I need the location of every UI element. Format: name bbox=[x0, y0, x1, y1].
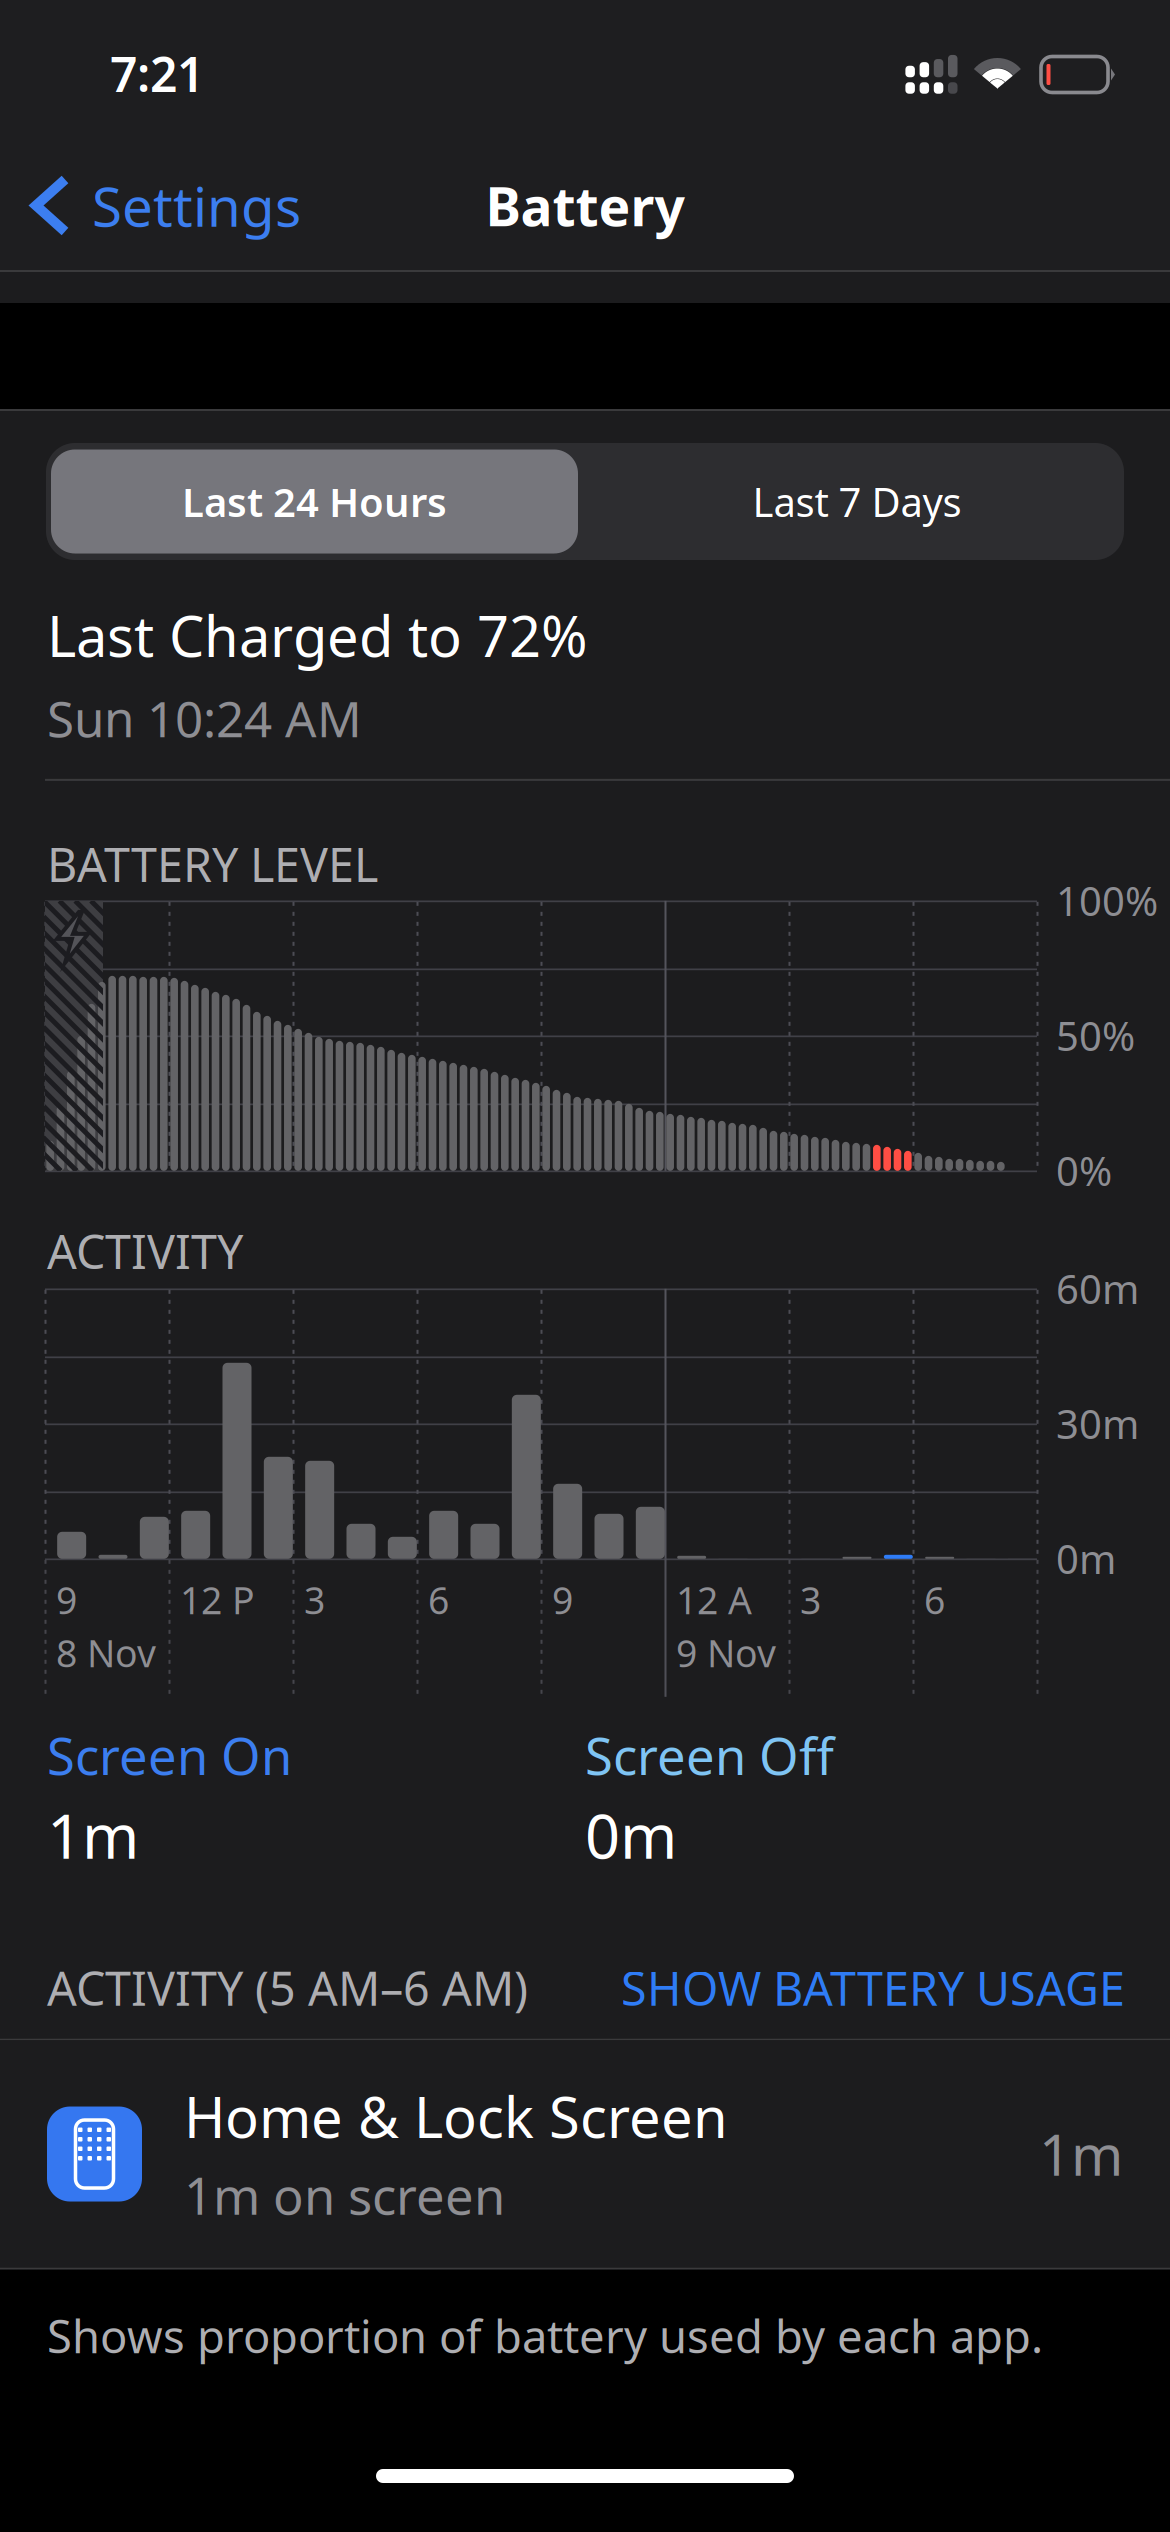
staticText: BATTERY LEVEL bbox=[47, 833, 378, 895]
staticText: Last 7 Days bbox=[752, 475, 961, 528]
staticText: ACTIVITY bbox=[47, 1220, 243, 1282]
staticText: 50% bbox=[1056, 1009, 1135, 1062]
staticText: 9 bbox=[56, 1575, 77, 1625]
staticText: 9 bbox=[552, 1575, 573, 1625]
staticText: 6 bbox=[924, 1575, 945, 1625]
staticText: 30m bbox=[1056, 1397, 1139, 1450]
staticText: 3 bbox=[800, 1575, 821, 1625]
staticText: 12 P bbox=[180, 1575, 255, 1625]
staticText: Sun 10:24 AM bbox=[47, 685, 362, 751]
staticText: 60m bbox=[1056, 1262, 1139, 1315]
button[interactable]: Settings bbox=[0, 157, 301, 254]
staticText: SHOW BATTERY USAGE bbox=[621, 1957, 1125, 2019]
staticText: Screen Off bbox=[585, 1722, 834, 1789]
staticText: 0m bbox=[585, 1794, 677, 1875]
staticText: 0m bbox=[1056, 1532, 1116, 1585]
staticText: Settings bbox=[92, 169, 301, 242]
button[interactable]: Last 24 Hours bbox=[46, 443, 590, 560]
staticText: Battery bbox=[485, 170, 684, 241]
staticText: 12 A bbox=[676, 1575, 752, 1625]
button[interactable]: Home & Lock Screen bbox=[0, 2040, 1170, 2267]
staticText: Home & Lock Screen bbox=[184, 2079, 728, 2154]
staticText: 9 Nov bbox=[676, 1628, 776, 1678]
button[interactable]: SHOW BATTERY USAGE bbox=[621, 1957, 1125, 2019]
staticText: 8 Nov bbox=[56, 1628, 156, 1678]
staticText: 1m bbox=[1039, 2117, 1123, 2191]
staticText: Last Charged to 72% bbox=[47, 598, 588, 672]
staticText: Last 24 Hours bbox=[182, 475, 447, 528]
staticText: 0% bbox=[1056, 1144, 1112, 1197]
staticText: 6 bbox=[428, 1575, 449, 1625]
staticText: 3 bbox=[304, 1575, 325, 1625]
staticText: 100% bbox=[1056, 874, 1158, 927]
staticText: 7:21 bbox=[110, 42, 204, 105]
staticText: 1m on screen bbox=[184, 2162, 505, 2229]
staticText: ACTIVITY (5 AM–6 AM) bbox=[47, 1957, 528, 2019]
staticText: Screen On bbox=[47, 1722, 292, 1789]
button[interactable]: Last 7 Days bbox=[590, 443, 1124, 560]
staticText: Shows proportion of battery used by each… bbox=[47, 2305, 1043, 2366]
staticText: 1m bbox=[47, 1794, 139, 1875]
